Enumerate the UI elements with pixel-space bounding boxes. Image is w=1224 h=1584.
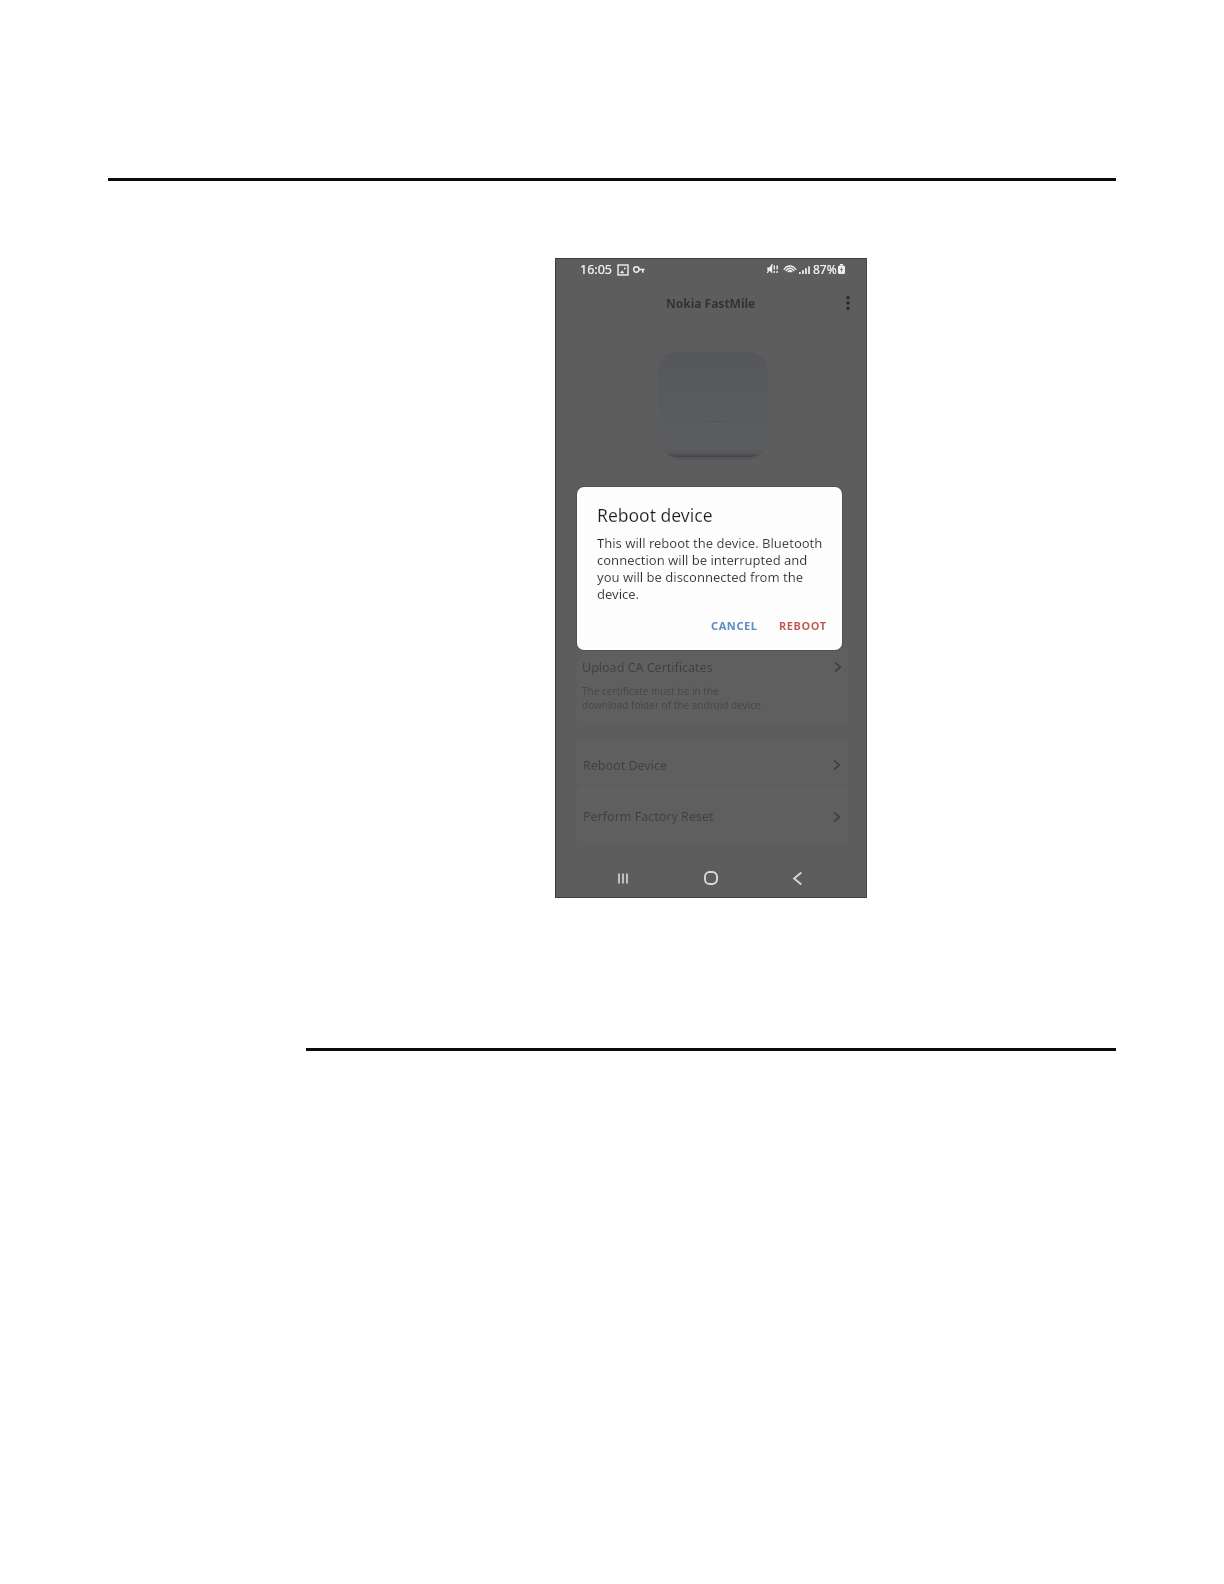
staticText: 87% xyxy=(813,261,837,277)
staticText: This will reboot the device. Bluetooth c… xyxy=(597,534,827,603)
button[interactable]: Back xyxy=(778,859,816,897)
button[interactable]: Perform Factory Reset xyxy=(577,791,848,842)
staticText: Reboot device xyxy=(597,503,713,527)
button[interactable]: Home xyxy=(692,859,730,897)
staticText: download folder of the android device. xyxy=(582,698,764,712)
button[interactable]: Upload CA Certificates xyxy=(577,648,848,686)
button[interactable]: REBOOT xyxy=(771,611,835,640)
staticText: 16:05 xyxy=(580,261,612,278)
staticText: The certificate must be in the xyxy=(582,684,719,698)
staticText: Perform Factory Reset xyxy=(583,808,714,825)
staticText: Upload CA Certificates xyxy=(582,659,713,676)
staticText: CANCEL xyxy=(711,618,758,633)
button[interactable]: Recent apps xyxy=(604,859,642,897)
button[interactable]: CANCEL xyxy=(703,611,766,640)
staticText: REBOOT xyxy=(779,618,827,633)
staticText: Reboot Device xyxy=(583,757,667,774)
button[interactable]: Reboot Device xyxy=(577,740,848,790)
button[interactable]: More options xyxy=(835,290,861,316)
staticText: Nokia FastMile xyxy=(666,295,756,311)
